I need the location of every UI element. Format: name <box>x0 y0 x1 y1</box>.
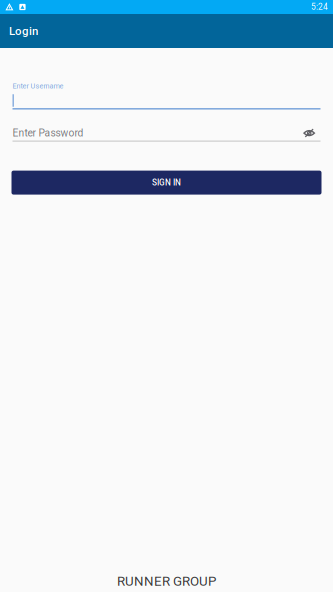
button[interactable]: Show password <box>297 127 320 140</box>
staticText: SIGN IN <box>152 178 181 187</box>
button[interactable]: Enter Password <box>12 126 297 141</box>
staticText: Enter Password <box>12 127 83 139</box>
staticText: Login <box>9 24 38 38</box>
staticText: Enter Username <box>12 82 63 90</box>
button[interactable]: Enter Username <box>12 48 320 110</box>
button[interactable]: SIGN IN <box>12 171 320 195</box>
staticText: RUNNER GROUP <box>117 573 216 589</box>
staticText: 5:24 <box>311 2 328 12</box>
